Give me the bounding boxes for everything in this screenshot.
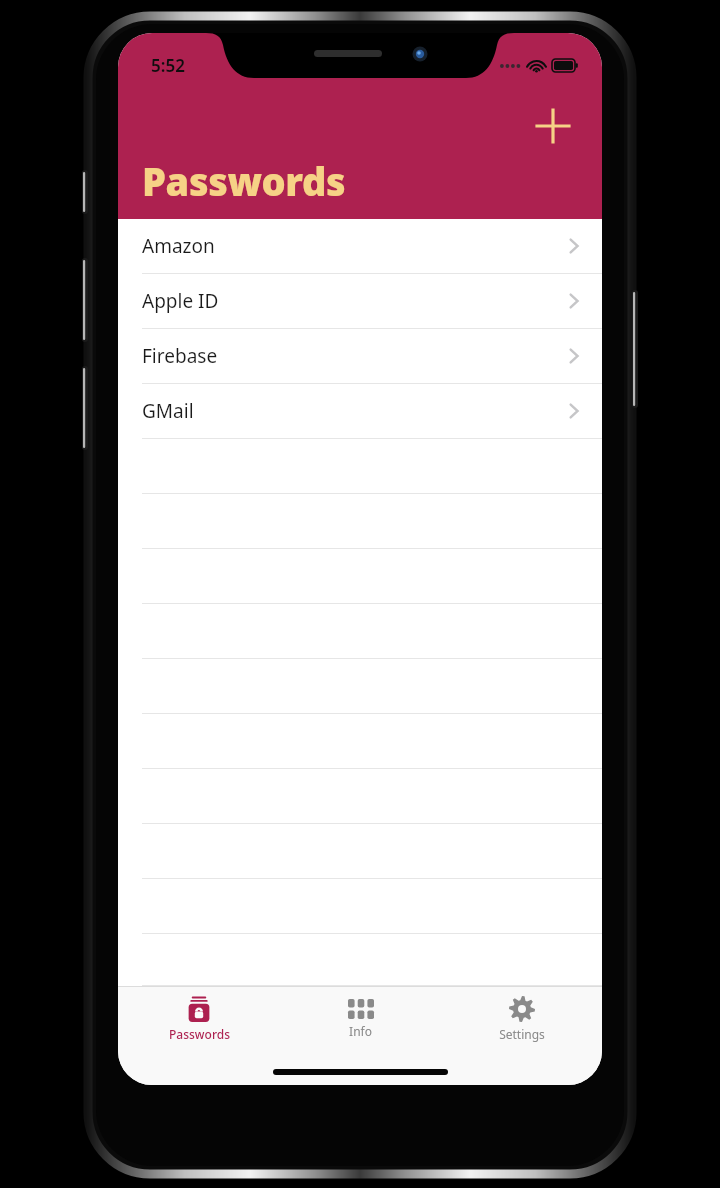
staticText: Passwords — [142, 155, 346, 207]
button[interactable]: Apple ID — [118, 274, 602, 329]
staticText: GMail — [142, 398, 568, 424]
staticText: Info — [349, 1023, 372, 1039]
button[interactable]: GMail — [118, 384, 602, 439]
button[interactable]: Add password — [532, 105, 574, 147]
button[interactable]: Settings — [441, 987, 602, 1051]
button[interactable]: Amazon — [118, 219, 602, 274]
staticText: Firebase — [142, 343, 568, 369]
staticText: Apple ID — [142, 288, 568, 314]
button[interactable]: Passwords — [118, 987, 280, 1051]
staticText: Amazon — [142, 233, 568, 259]
staticText: 5:52 — [151, 54, 185, 77]
staticText: Settings — [499, 1026, 545, 1042]
button[interactable]: Info — [280, 987, 441, 1051]
button[interactable]: Firebase — [118, 329, 602, 384]
staticText: Passwords — [169, 1026, 230, 1042]
